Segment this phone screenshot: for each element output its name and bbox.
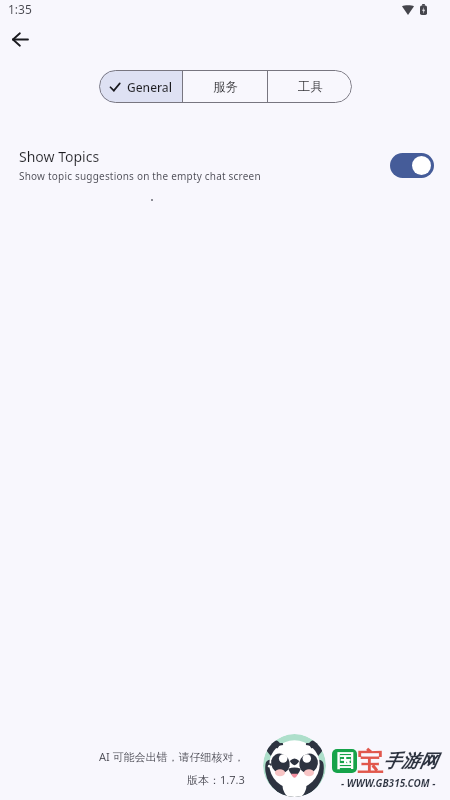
staticText: Show topic suggestions on the empty chat… — [19, 169, 261, 183]
staticText: 手游网 — [383, 750, 437, 773]
staticText: 工具 — [298, 79, 323, 95]
button[interactable]: 服务 — [183, 70, 267, 103]
staticText: General — [127, 79, 172, 95]
staticText: 国 — [336, 750, 354, 773]
staticText: 版本：1.7.3 — [187, 772, 245, 787]
button[interactable]: General — [99, 70, 182, 103]
staticText: Show Topics — [19, 147, 100, 166]
button[interactable]: Back — [1, 20, 40, 59]
button[interactable]: Show Topics toggle — [390, 153, 434, 178]
staticText: 服务 — [213, 79, 238, 95]
staticText: AI 可能会出错，请仔细核对， — [99, 749, 245, 764]
staticText: 1:35 — [8, 1, 32, 17]
staticText: 宝 — [357, 746, 383, 779]
button[interactable]: Show Topics — [0, 141, 450, 189]
button[interactable]: 工具 — [268, 70, 352, 103]
staticText: - WWW.GB315.COM - — [341, 776, 436, 790]
